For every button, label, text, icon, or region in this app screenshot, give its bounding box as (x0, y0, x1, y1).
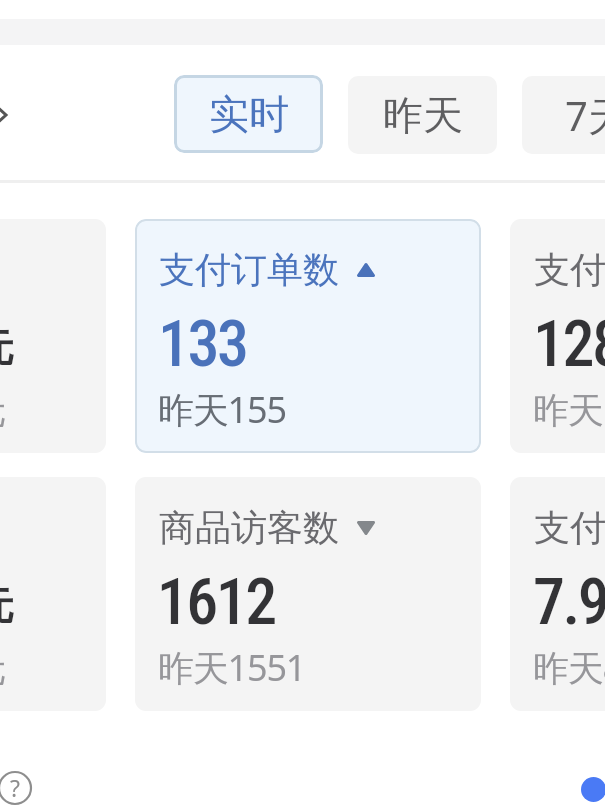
staticText: 昨天2999.00元 (0, 385, 6, 434)
button[interactable]: Assistant (581, 777, 605, 802)
button[interactable]: 商品访客数 (135, 477, 481, 711)
staticText: 昨天141 (533, 385, 605, 434)
button[interactable]: 7天 (522, 76, 605, 154)
staticText: 支付订单数 (159, 247, 339, 292)
button[interactable]: Help (0, 764, 39, 807)
staticText: ? (10, 772, 20, 803)
staticText: 昨天2410.00元 (0, 643, 6, 692)
staticText: 支付人数 (534, 247, 605, 292)
staticText: 昨天1551 (158, 643, 306, 692)
staticText: 实时 (209, 89, 289, 139)
staticText: 133 (158, 307, 247, 382)
staticText: 1612 (158, 565, 276, 640)
button[interactable]: 客单价 (0, 477, 106, 711)
button[interactable]: 昨天 (348, 76, 497, 154)
staticText: 支付转化率 (534, 505, 605, 550)
staticText: 元 (0, 582, 14, 630)
staticText: 7.9% (533, 565, 605, 640)
button[interactable]: 支付转化率 (510, 477, 605, 711)
staticText: 昨天155 (158, 385, 286, 434)
button[interactable]: 支付订单数 (135, 219, 481, 453)
staticText: 商品访客数 (159, 505, 339, 550)
staticText: 元 (0, 324, 14, 372)
staticText: 128 (533, 307, 605, 382)
button[interactable]: Next (0, 95, 12, 135)
button[interactable]: 支付人数 (510, 219, 605, 453)
button[interactable]: 支付金额 (0, 219, 106, 453)
staticText: 昨天8.3% (533, 643, 605, 692)
staticText: 昨天 (383, 90, 463, 140)
staticText: 7天 (565, 88, 605, 143)
button[interactable]: 实时 (174, 75, 323, 153)
